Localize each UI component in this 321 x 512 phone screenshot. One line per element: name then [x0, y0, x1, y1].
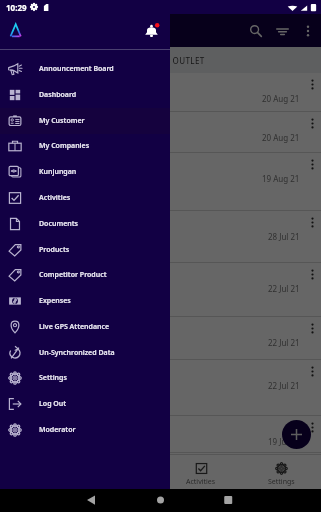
button[interactable]: Search — [243, 18, 269, 44]
staticText: Kunjungan — [39, 167, 77, 177]
button[interactable]: Add — [282, 420, 311, 449]
staticText: 28 Jul 21 — [268, 231, 300, 242]
staticText: My Companies — [39, 141, 90, 151]
staticText: 19 Jul 21 — [268, 436, 300, 447]
staticText: My Customer — [39, 116, 85, 126]
button[interactable]: Competitor Product — [0, 262, 170, 288]
button[interactable]: Filter — [269, 18, 295, 44]
button[interactable]: ALL OUTLET — [155, 47, 205, 73]
button[interactable]: Item menu — [305, 420, 319, 434]
button[interactable]: Notifications — [140, 20, 162, 42]
button[interactable]: Moderator — [0, 417, 170, 443]
button[interactable]: Activities — [161, 454, 241, 489]
staticText: Settings — [39, 373, 67, 383]
button[interactable]: Un-Synchronized Data — [0, 340, 170, 366]
button[interactable]: Documents — [0, 211, 170, 237]
staticText: Settings — [268, 477, 295, 487]
button[interactable]: Item menu — [305, 321, 319, 335]
button[interactable]: 22 Jul 21 — [0, 360, 321, 416]
staticText: 22 Jul 21 — [268, 337, 300, 348]
button[interactable]: Log Out — [0, 391, 170, 417]
staticText: Announcement Board — [39, 64, 114, 74]
button[interactable]: My Companies — [0, 133, 170, 159]
button[interactable]: 19 Aug 21 — [0, 153, 321, 211]
staticText: Live GPS Attendance — [39, 322, 110, 332]
staticText: Documents — [39, 219, 78, 229]
button[interactable]: Announcement Board — [0, 56, 170, 82]
staticText: Dashboard — [39, 90, 77, 100]
staticText: 19 Aug 21 — [262, 173, 300, 184]
button[interactable]: Activities — [0, 185, 170, 211]
button[interactable]: Item menu — [305, 364, 319, 378]
staticText: Activities — [39, 193, 71, 203]
staticText: Moderator — [39, 425, 76, 435]
button[interactable]: More options — [295, 18, 321, 44]
button[interactable]: 20 Aug 21 — [0, 73, 321, 112]
button[interactable]: 28 Jul 21 — [0, 211, 321, 263]
button[interactable]: Expenses — [0, 288, 170, 314]
button[interactable]: Settings — [241, 454, 321, 489]
button[interactable]: Open navigation — [4, 19, 27, 42]
staticText: 22 Jul 21 — [268, 380, 300, 391]
staticText: Log Out — [39, 399, 67, 409]
staticText: 20 Aug 21 — [262, 132, 300, 143]
button[interactable]: Live GPS Attendance — [0, 314, 170, 340]
staticText: Expenses — [39, 296, 71, 306]
button[interactable]: 22 Jul 21 — [0, 263, 321, 317]
staticText: Products — [39, 245, 70, 255]
button[interactable]: 22 Jul 21 — [0, 317, 321, 360]
button[interactable]: Item menu — [305, 116, 319, 130]
staticText: Activities — [186, 477, 216, 487]
button[interactable]: Kunjungan — [0, 159, 170, 185]
staticText: Un-Synchronized Data — [39, 348, 115, 358]
staticText: Competitor Product — [39, 270, 107, 280]
button[interactable]: Dashboard — [0, 82, 170, 108]
staticText: ALL OUTLET — [155, 55, 205, 66]
staticText: 22 Jul 21 — [268, 283, 300, 294]
button[interactable]: Products — [0, 237, 170, 263]
button[interactable]: My Customer — [0, 108, 170, 134]
button[interactable]: 20 Aug 21 — [0, 112, 321, 153]
button[interactable]: Item menu — [305, 267, 319, 281]
button[interactable]: Settings — [0, 365, 170, 391]
staticText: 10:29 — [6, 2, 27, 13]
button[interactable]: Item menu — [305, 77, 319, 91]
staticText: 20 Aug 21 — [262, 93, 300, 104]
button[interactable]: 19 Jul 21 — [0, 416, 321, 453]
button[interactable]: Item menu — [305, 157, 319, 171]
button[interactable]: Item menu — [305, 215, 319, 229]
